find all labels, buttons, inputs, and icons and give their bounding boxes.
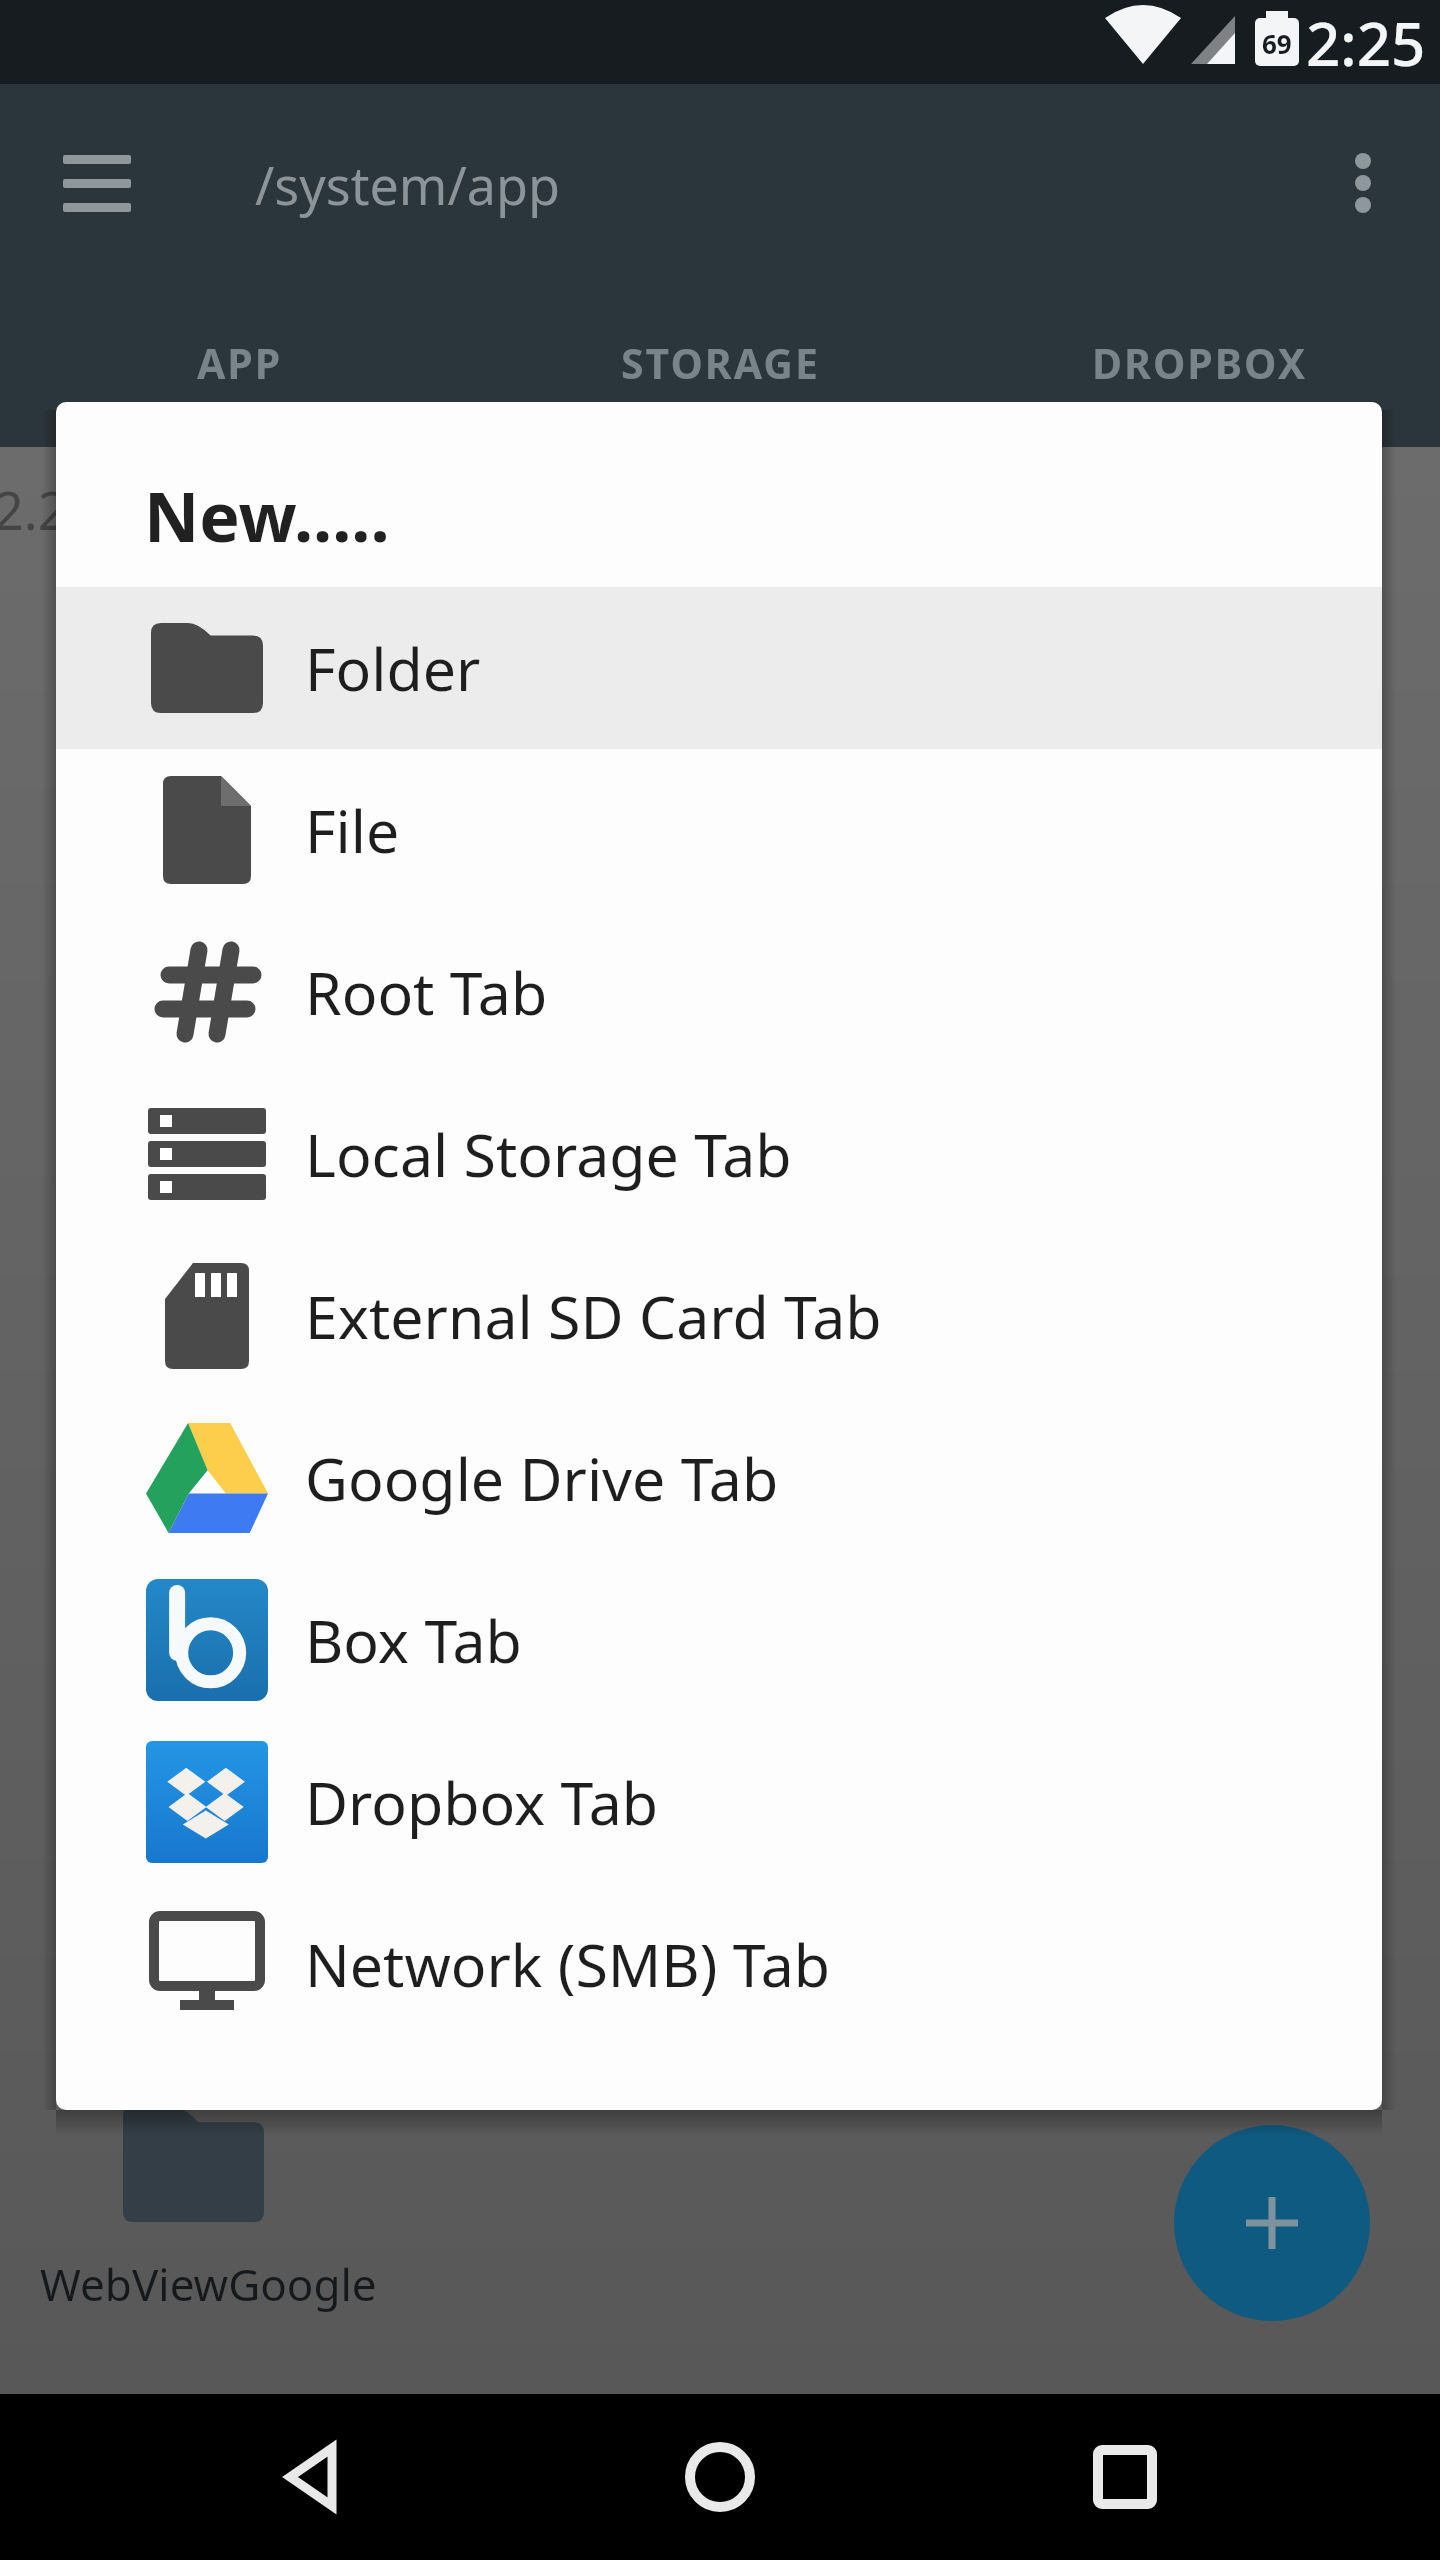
button[interactable] — [620, 2394, 820, 2560]
button[interactable] — [215, 2394, 415, 2560]
staticText: File — [305, 790, 400, 870]
staticText: 2.2 — [0, 474, 68, 545]
staticText: /system/app — [255, 149, 560, 220]
button[interactable]: Google Drive Tab — [56, 1397, 1382, 1559]
staticText: Network (SMB) Tab — [305, 1924, 831, 2004]
button[interactable] — [1025, 2394, 1225, 2560]
staticText: Local Storage Tab — [305, 1114, 792, 1194]
button[interactable] — [1174, 2125, 1370, 2321]
staticText: STORAGE — [621, 335, 820, 391]
button[interactable]: Root Tab — [56, 911, 1382, 1073]
button[interactable]: Folder — [56, 587, 1382, 749]
staticText: DROPBOX — [1092, 335, 1308, 391]
button[interactable]: Dropbox Tab — [56, 1721, 1382, 1883]
button[interactable]: DROPBOX — [1070, 320, 1330, 406]
button[interactable]: Box Tab — [56, 1559, 1382, 1721]
button[interactable]: Local Storage Tab — [56, 1073, 1382, 1235]
button[interactable] — [48, 152, 148, 224]
button[interactable]: STORAGE — [590, 320, 850, 406]
staticText: 2:25 — [1306, 2, 1426, 84]
button[interactable]: File — [56, 749, 1382, 911]
staticText: Folder — [305, 628, 481, 708]
button[interactable]: External SD Card Tab — [56, 1235, 1382, 1397]
staticText: New..... — [144, 469, 390, 562]
staticText: External SD Card Tab — [305, 1276, 882, 1356]
staticText: Google Drive Tab — [305, 1438, 779, 1518]
staticText: Box Tab — [305, 1600, 522, 1680]
button[interactable] — [1320, 138, 1406, 230]
staticText: Root Tab — [305, 952, 548, 1032]
staticText: Dropbox Tab — [305, 1762, 659, 1842]
button[interactable]: APP — [110, 320, 370, 406]
button[interactable]: Network (SMB) Tab — [56, 1883, 1382, 2045]
staticText: APP — [197, 335, 283, 391]
staticText: WebViewGoogle — [40, 2254, 377, 2314]
staticText: 69 — [1262, 26, 1292, 61]
